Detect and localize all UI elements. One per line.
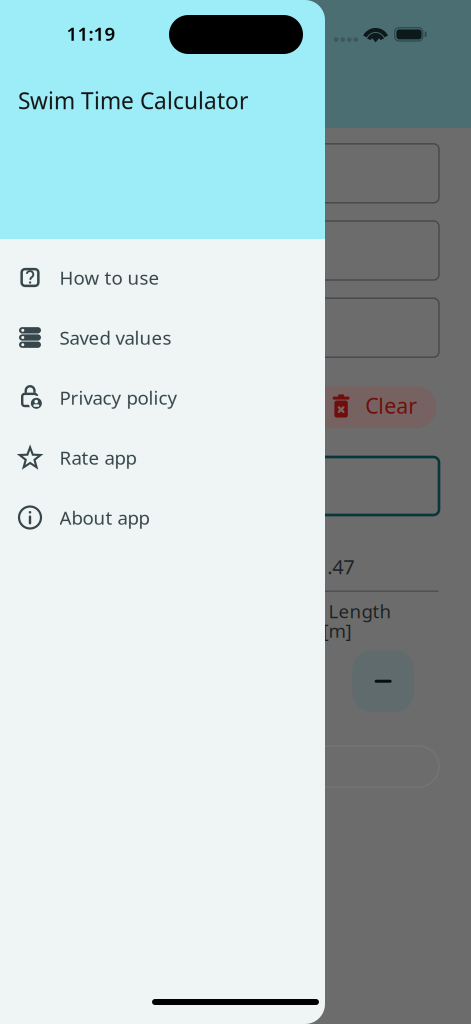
button[interactable]: Rate app <box>0 427 325 487</box>
staticText: About app <box>59 505 149 530</box>
button[interactable]: Privacy policy <box>0 367 325 427</box>
staticText: Clear <box>365 391 417 420</box>
staticText: Saved values <box>59 325 171 350</box>
button[interactable]: How to use <box>0 247 325 307</box>
staticText: Swim Time Calculator <box>18 85 248 115</box>
staticText: Rate app <box>59 445 136 470</box>
staticText: Privacy policy <box>59 385 177 410</box>
staticText: Stroke Length <box>267 599 391 623</box>
staticText: 11:19 <box>66 21 115 46</box>
staticText: How to use <box>59 265 159 290</box>
button[interactable]: Saved values <box>0 307 325 367</box>
staticText: Swim Time Calculator <box>18 85 248 115</box>
staticText: 0:21.47 <box>289 553 354 580</box>
staticText: [m] <box>322 618 351 643</box>
button[interactable]: About app <box>0 487 325 547</box>
